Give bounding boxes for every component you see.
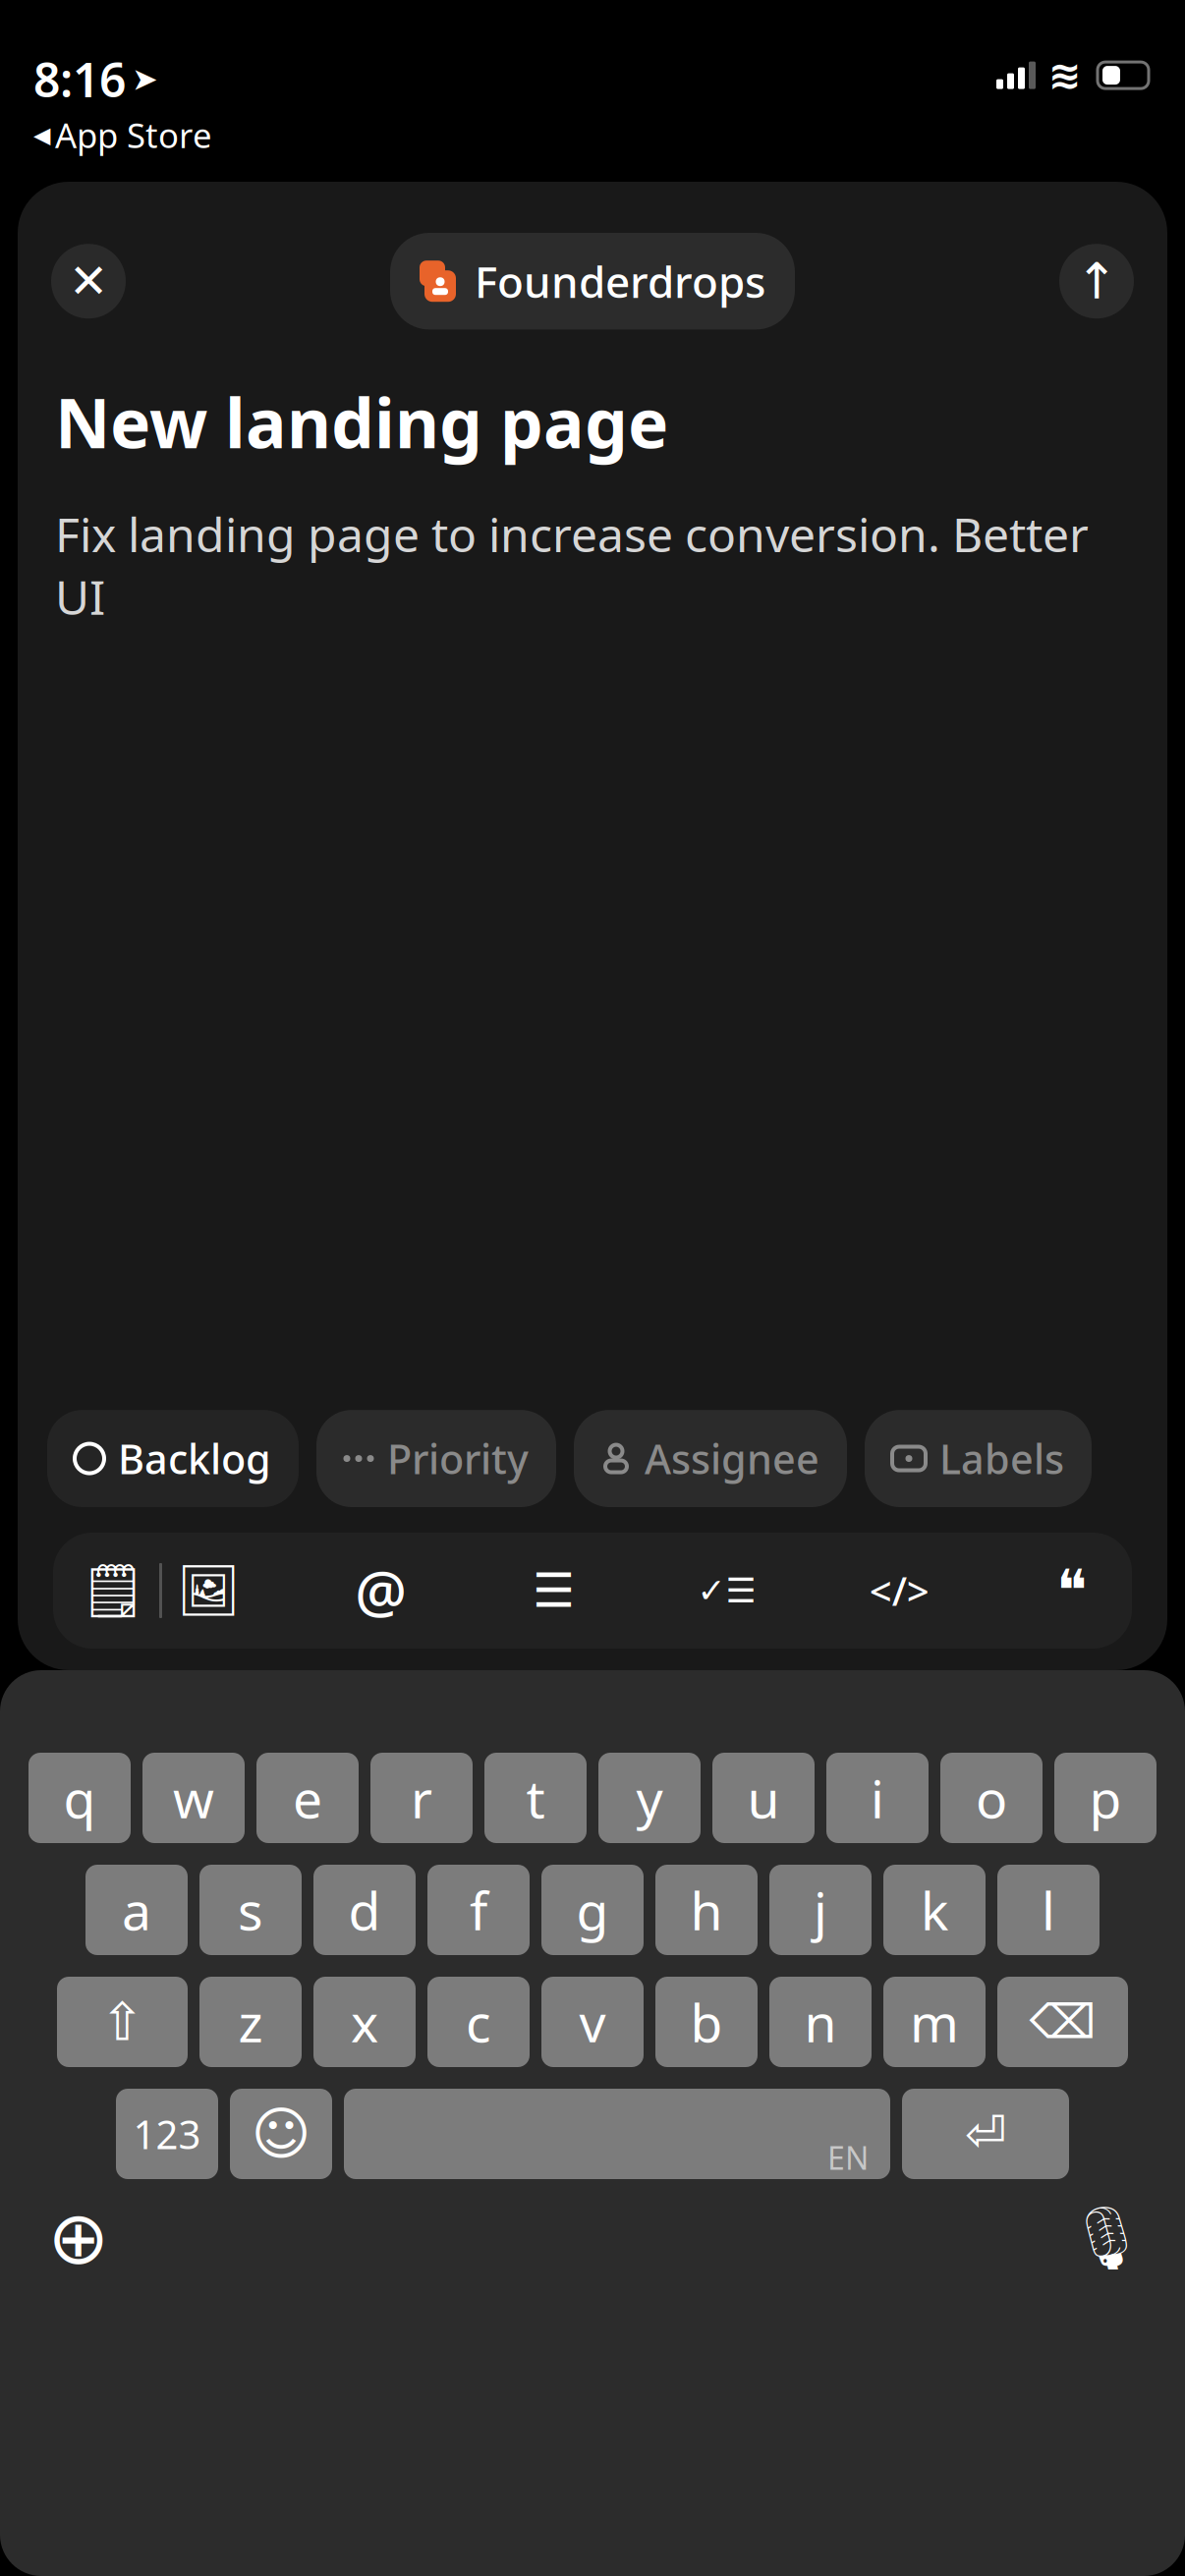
- staticText: e: [293, 1763, 322, 1833]
- staticText: i: [871, 1763, 884, 1833]
- staticText: ✓☰: [697, 1571, 756, 1610]
- button[interactable]: d: [313, 1865, 416, 1955]
- staticText: ⏎: [965, 2106, 1006, 2162]
- button[interactable]: Delete: [997, 1977, 1128, 2067]
- staticText: ⌫: [1029, 1995, 1096, 2049]
- button[interactable]: Shift: [57, 1977, 188, 2067]
- staticText: p: [1089, 1763, 1122, 1833]
- staticText: ❝: [1056, 1558, 1088, 1623]
- staticText: ☺: [251, 2101, 311, 2167]
- staticText: App Store: [55, 112, 212, 158]
- button[interactable]: s: [199, 1865, 302, 1955]
- button[interactable]: Image: [178, 1560, 239, 1621]
- button[interactable]: Checklist: [696, 1560, 757, 1621]
- button[interactable]: Next keyboard: [39, 2199, 118, 2277]
- button[interactable]: Founderdrops: [390, 233, 795, 330]
- staticText: ↑: [1076, 253, 1117, 309]
- staticText: c: [466, 1987, 491, 2057]
- staticText: k: [921, 1875, 948, 1945]
- staticText: t: [526, 1763, 545, 1833]
- staticText: l: [1042, 1875, 1055, 1945]
- staticText: b: [690, 1987, 723, 2057]
- button[interactable]: Close: [51, 244, 126, 319]
- button[interactable]: a: [85, 1865, 188, 1955]
- staticText: Fix landing page to increase conversion.…: [55, 503, 1089, 628]
- button[interactable]: Bulleted list: [523, 1560, 584, 1621]
- button[interactable]: Emoji: [230, 2089, 332, 2179]
- button[interactable]: Priority: [316, 1410, 556, 1507]
- staticText: Labels: [939, 1432, 1064, 1485]
- staticText: d: [348, 1875, 381, 1945]
- staticText: ⊕: [48, 2196, 110, 2280]
- staticText: ➤: [132, 61, 158, 97]
- button[interactable]: Space: [344, 2089, 890, 2179]
- button[interactable]: m: [883, 1977, 986, 2067]
- staticText: q: [63, 1763, 96, 1833]
- staticText: h: [690, 1875, 723, 1945]
- staticText: @: [355, 1552, 407, 1629]
- button[interactable]: v: [541, 1977, 644, 2067]
- button[interactable]: p: [1054, 1753, 1157, 1843]
- staticText: x: [351, 1987, 378, 2057]
- button[interactable]: Mention: [351, 1560, 412, 1621]
- button[interactable]: Backlog: [47, 1410, 299, 1507]
- staticText: y: [636, 1763, 663, 1833]
- button[interactable]: f: [427, 1865, 530, 1955]
- staticText: New landing page: [55, 377, 668, 467]
- button[interactable]: r: [370, 1753, 473, 1843]
- staticText: EN: [827, 2137, 869, 2178]
- staticText: 🎙: [1067, 2202, 1146, 2274]
- staticText: r: [411, 1763, 432, 1833]
- staticText: ⇧: [100, 1992, 144, 2052]
- staticText: Backlog: [118, 1432, 271, 1485]
- staticText: j: [814, 1875, 827, 1945]
- button[interactable]: Return: [902, 2089, 1069, 2179]
- staticText: 8:16: [33, 48, 126, 110]
- button[interactable]: n: [769, 1977, 872, 2067]
- staticText: o: [976, 1763, 1007, 1833]
- button[interactable]: x: [313, 1977, 416, 2067]
- button[interactable]: Quote: [1042, 1560, 1102, 1621]
- button[interactable]: j: [769, 1865, 872, 1955]
- staticText: </>: [869, 1564, 929, 1617]
- button[interactable]: g: [541, 1865, 644, 1955]
- staticText: u: [747, 1763, 780, 1833]
- button[interactable]: l: [997, 1865, 1100, 1955]
- staticText: 🗒: [80, 1561, 146, 1620]
- staticText: ≋: [1048, 53, 1082, 98]
- button[interactable]: c: [427, 1977, 530, 2067]
- button[interactable]: e: [256, 1753, 359, 1843]
- staticText: Assignee: [645, 1432, 819, 1485]
- button[interactable]: Code: [869, 1560, 930, 1621]
- button[interactable]: Dictation: [1067, 2199, 1146, 2277]
- button[interactable]: Labels: [865, 1410, 1092, 1507]
- button[interactable]: q: [28, 1753, 131, 1843]
- button[interactable]: Note: [83, 1560, 143, 1621]
- staticText: ☰: [533, 1564, 575, 1617]
- button[interactable]: Assignee: [574, 1410, 847, 1507]
- button[interactable]: h: [655, 1865, 758, 1955]
- button[interactable]: y: [598, 1753, 701, 1843]
- button[interactable]: Submit: [1059, 244, 1134, 319]
- button[interactable]: i: [826, 1753, 929, 1843]
- staticText: 123: [133, 2108, 201, 2160]
- button[interactable]: k: [883, 1865, 986, 1955]
- staticText: m: [910, 1987, 959, 2057]
- staticText: 🖼: [177, 1562, 240, 1619]
- staticText: ✕: [69, 254, 108, 308]
- button[interactable]: u: [712, 1753, 815, 1843]
- button[interactable]: z: [199, 1977, 302, 2067]
- button[interactable]: b: [655, 1977, 758, 2067]
- staticText: w: [173, 1763, 214, 1833]
- button[interactable]: Numbers: [116, 2089, 218, 2179]
- staticText: ◀: [33, 122, 50, 148]
- staticText: Priority: [387, 1432, 529, 1485]
- staticText: s: [238, 1875, 263, 1945]
- staticText: f: [470, 1875, 487, 1945]
- staticText: Founderdrops: [475, 252, 765, 310]
- button[interactable]: t: [484, 1753, 587, 1843]
- button[interactable]: w: [142, 1753, 245, 1843]
- button[interactable]: o: [940, 1753, 1043, 1843]
- staticText: n: [804, 1987, 837, 2057]
- staticText: z: [238, 1987, 263, 2057]
